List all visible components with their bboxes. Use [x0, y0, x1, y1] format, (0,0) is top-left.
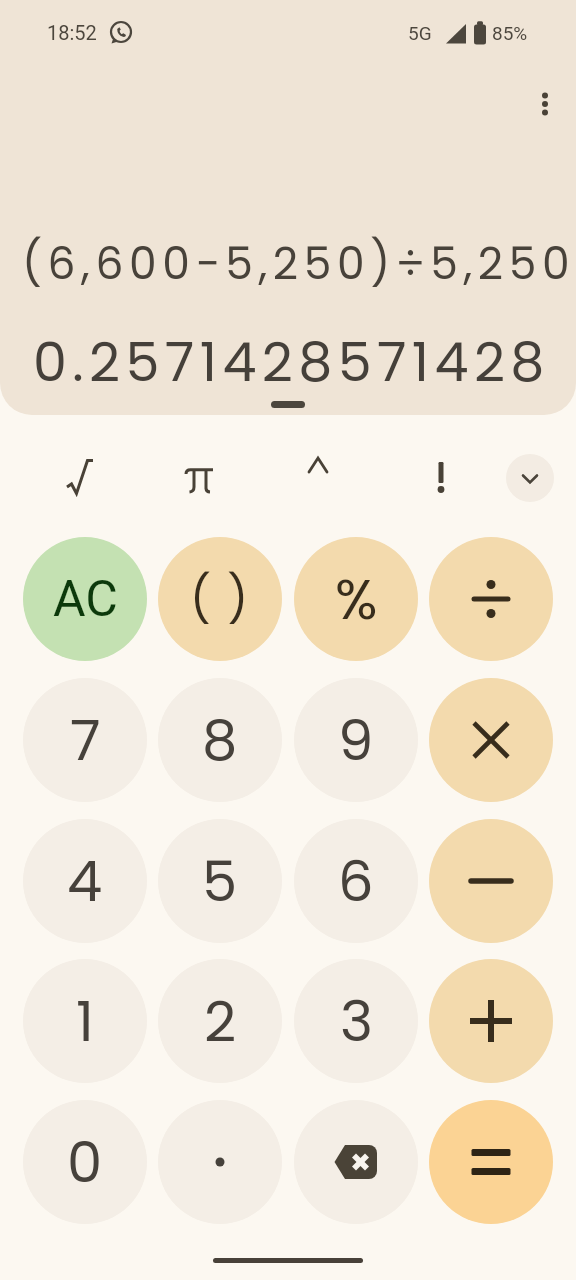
button[interactable] — [521, 80, 569, 128]
button[interactable] — [429, 959, 553, 1083]
button[interactable] — [158, 1100, 282, 1224]
button[interactable]: 7 — [23, 678, 147, 802]
staticText: % — [335, 560, 378, 638]
staticText: 5 — [202, 842, 238, 920]
button[interactable]: 3 — [294, 959, 418, 1083]
staticText: 5G — [408, 22, 432, 44]
button[interactable] — [48, 446, 108, 506]
staticText: 85% — [492, 22, 528, 44]
button[interactable]: 5 — [158, 819, 282, 943]
button[interactable] — [429, 1100, 553, 1224]
button[interactable]: 6 — [294, 819, 418, 943]
button[interactable]: 1 — [23, 959, 147, 1083]
staticText: AC — [53, 570, 118, 629]
button[interactable] — [170, 446, 230, 506]
staticText: 0 — [67, 1123, 103, 1201]
button[interactable]: AC — [23, 537, 147, 661]
button[interactable]: 9 — [294, 678, 418, 802]
button[interactable] — [429, 537, 553, 661]
staticText: 9 — [338, 701, 374, 779]
button[interactable] — [288, 435, 348, 495]
staticText: 7 — [70, 701, 101, 779]
button[interactable]: ( ) — [158, 537, 282, 661]
button[interactable]: 2 — [158, 959, 282, 1083]
button[interactable] — [429, 678, 553, 802]
staticText: 3 — [340, 982, 373, 1060]
staticText: 8 — [202, 701, 238, 779]
button[interactable]: 8 — [158, 678, 282, 802]
button[interactable] — [294, 1100, 418, 1224]
button[interactable]: 4 — [23, 819, 147, 943]
staticText: ( ) — [190, 567, 251, 631]
staticText: 6 — [338, 842, 374, 920]
staticText: (6,600−5,250)÷5,250 — [22, 233, 576, 295]
staticText: 0.2571428571428 — [33, 324, 550, 400]
button[interactable] — [506, 454, 554, 502]
button[interactable]: 0 — [23, 1100, 147, 1224]
button[interactable] — [411, 446, 471, 506]
staticText: 18:52 — [47, 21, 97, 44]
staticText: 2 — [204, 982, 237, 1060]
button[interactable] — [429, 819, 553, 943]
staticText: 4 — [67, 842, 103, 920]
button[interactable]: % — [294, 537, 418, 661]
staticText: 1 — [76, 982, 94, 1060]
